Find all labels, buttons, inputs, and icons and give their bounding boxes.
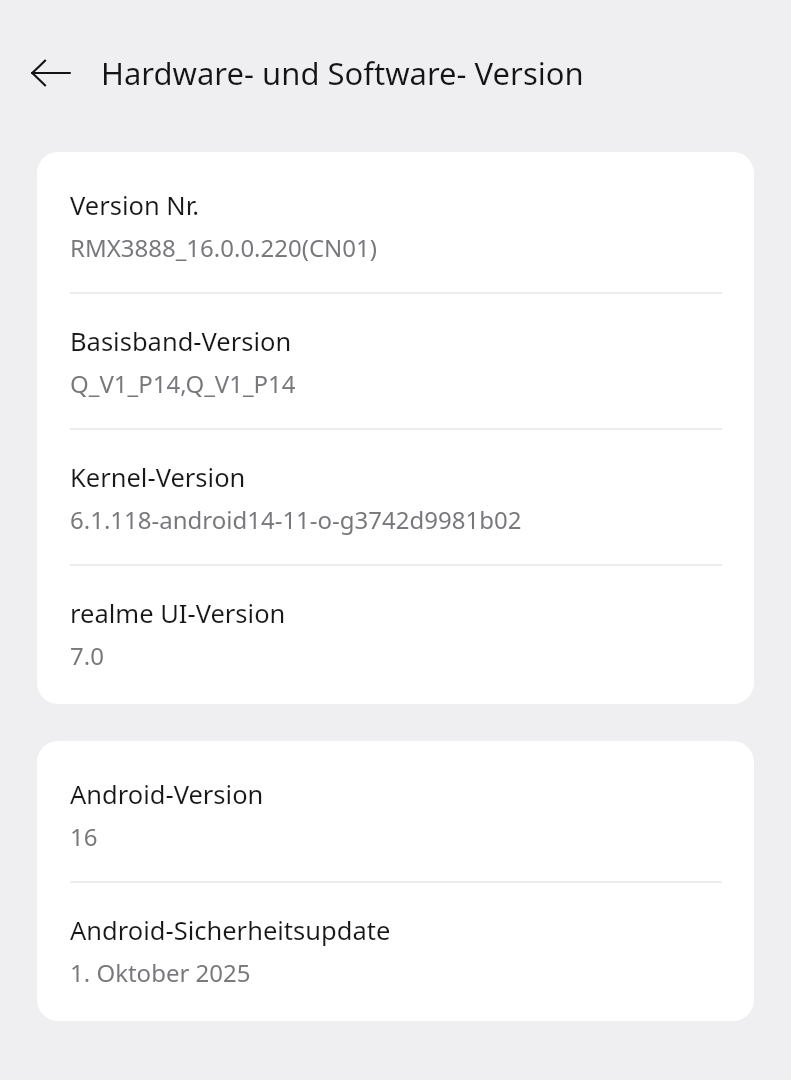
button[interactable]: Android-Version [37,741,754,881]
staticText: RMX3888_16.0.0.220(CN01) [70,231,377,264]
staticText: 6.1.118-android14-11-o-g3742d9981b02 [70,503,522,536]
staticText: Android-Sicherheitsupdate [70,913,391,948]
staticText: realme UI-Version [70,596,286,631]
staticText: Basisband-Version [70,324,292,359]
button[interactable]: Kernel-Version [37,430,754,564]
button[interactable]: Basisband-Version [37,294,754,428]
button[interactable]: realme UI-Version [37,566,754,704]
staticText: Kernel-Version [70,460,246,495]
staticText: 16 [70,820,98,853]
staticText: Version Nr. [70,188,199,223]
staticText: Q_V1_P14,Q_V1_P14 [70,367,296,400]
staticText: Hardware- und Software- Version [101,52,584,94]
button[interactable]: Android-Sicherheitsupdate [37,883,754,1021]
staticText: 7.0 [70,639,104,672]
button[interactable]: Back [22,44,80,102]
button[interactable]: Version Nr. [37,152,754,292]
staticText: Android-Version [70,777,264,812]
staticText: 1. Oktober 2025 [70,956,251,989]
